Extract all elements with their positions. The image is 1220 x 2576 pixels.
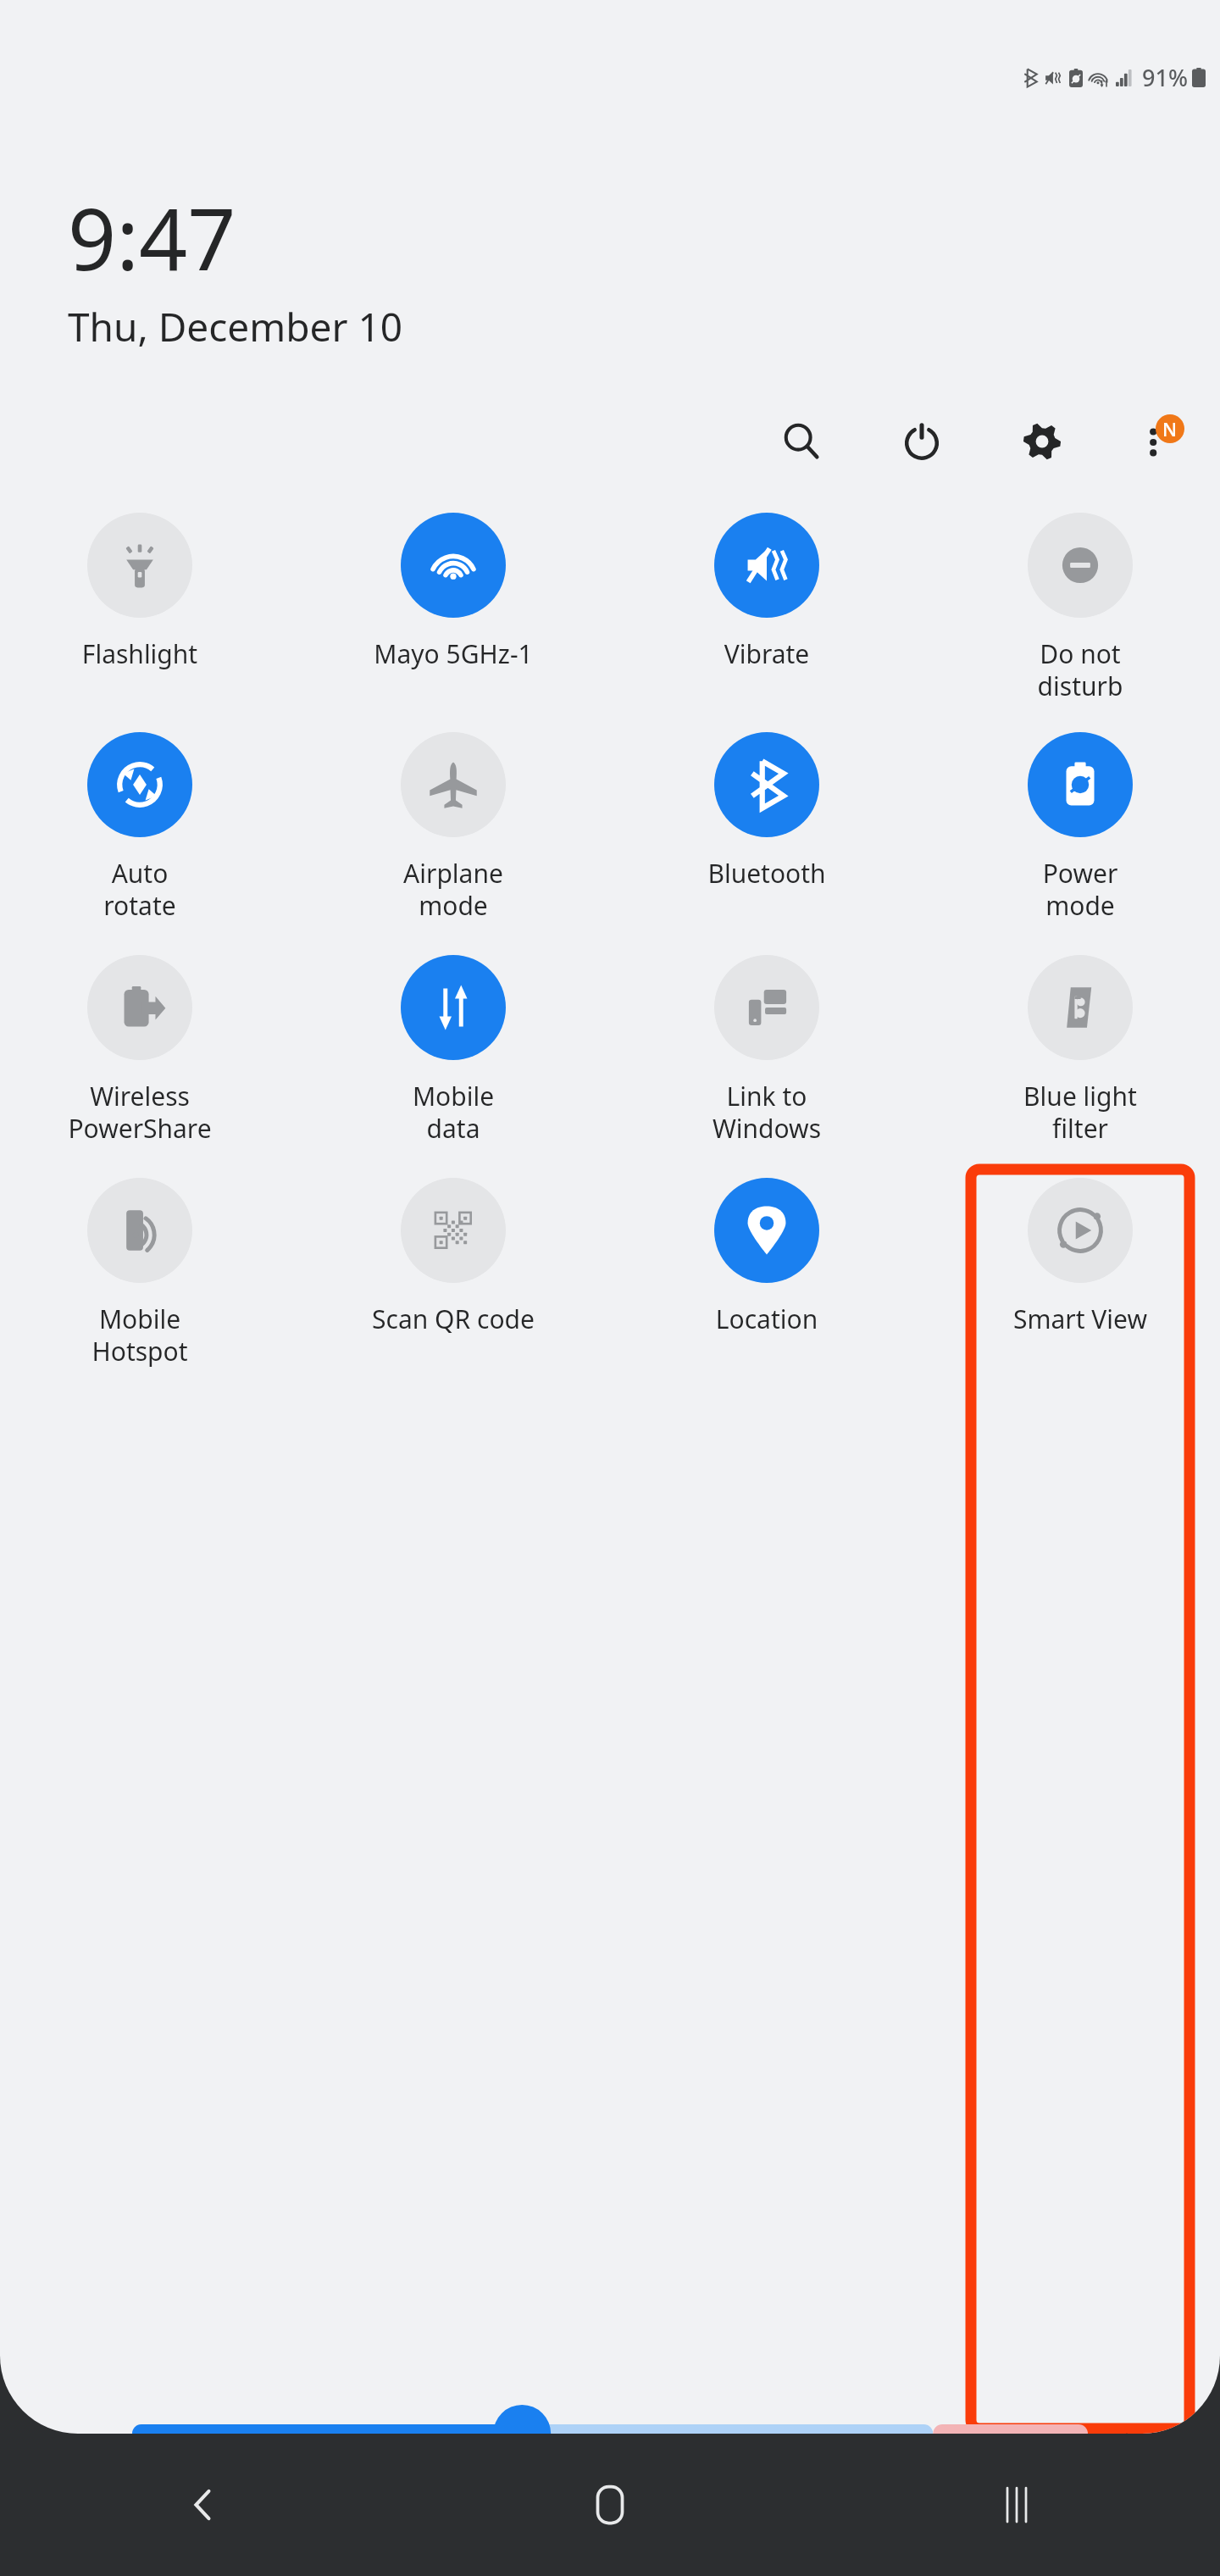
staticText: Wireless PowerShare bbox=[47, 1079, 233, 1146]
staticText: Mobile data bbox=[360, 1079, 546, 1146]
button[interactable]: Mobile data bbox=[339, 955, 568, 1146]
staticText: Auto rotate bbox=[47, 856, 233, 923]
button[interactable]: Mayo 5GHz-1 bbox=[339, 513, 568, 671]
staticText: Flashlight bbox=[47, 636, 233, 671]
button[interactable]: Scan QR code bbox=[339, 1178, 568, 1336]
button[interactable]: Bluetooth bbox=[652, 732, 881, 891]
button[interactable]: Location bbox=[652, 1178, 881, 1336]
button[interactable]: Search bbox=[761, 401, 842, 482]
button[interactable]: Link to Windows bbox=[652, 955, 881, 1146]
button[interactable]: Flashlight bbox=[25, 513, 254, 671]
staticText: Airplane mode bbox=[360, 856, 546, 923]
staticText: Location bbox=[674, 1302, 860, 1336]
button[interactable]: Back bbox=[0, 2434, 407, 2576]
staticText: Mayo 5GHz-1 bbox=[360, 636, 546, 671]
button[interactable]: Auto rotate bbox=[25, 732, 254, 923]
staticText: Do not disturb bbox=[987, 636, 1173, 703]
button[interactable]: Vibrate bbox=[652, 513, 881, 671]
button[interactable]: Blue light filter bbox=[966, 955, 1195, 1146]
staticText: 9:47 bbox=[68, 180, 236, 295]
staticText: N bbox=[1162, 416, 1178, 441]
button[interactable]: Smart View bbox=[966, 1178, 1195, 1336]
staticText: Blue light filter bbox=[987, 1079, 1173, 1146]
staticText: Smart View bbox=[987, 1302, 1173, 1336]
staticText: Mobile Hotspot bbox=[47, 1302, 233, 1368]
staticText: Thu, December 10 bbox=[68, 300, 403, 353]
button[interactable]: More options bbox=[1117, 401, 1198, 482]
button[interactable]: Do not disturb bbox=[966, 513, 1195, 703]
button[interactable]: Power off bbox=[881, 401, 962, 482]
staticText: 91% bbox=[1142, 62, 1188, 93]
button[interactable]: Home bbox=[407, 2434, 813, 2576]
button[interactable]: Mobile Hotspot bbox=[25, 1178, 254, 1368]
button[interactable]: Airplane mode bbox=[339, 732, 568, 923]
button[interactable]: Power mode bbox=[966, 732, 1195, 923]
staticText: Bluetooth bbox=[674, 856, 860, 891]
button[interactable]: Wireless PowerShare bbox=[25, 955, 254, 1146]
staticText: Vibrate bbox=[674, 636, 860, 671]
staticText: Link to Windows bbox=[674, 1079, 860, 1146]
staticText: Power mode bbox=[987, 856, 1173, 923]
staticText: Scan QR code bbox=[360, 1302, 546, 1336]
button[interactable]: Settings bbox=[1001, 401, 1083, 482]
button[interactable]: Recents bbox=[813, 2434, 1220, 2576]
